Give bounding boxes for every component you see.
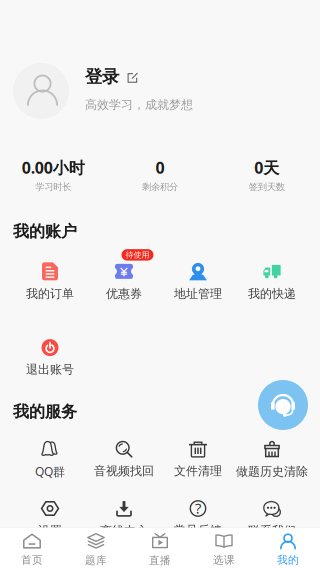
- staticText: 优惠券: [106, 286, 142, 301]
- button[interactable]: 我的订单: [13, 262, 87, 301]
- staticText: 我的服务: [13, 402, 77, 421]
- staticText: 签到天数: [249, 181, 285, 193]
- staticText: 我的账户: [13, 222, 77, 241]
- button[interactable]: 选课: [192, 529, 256, 566]
- staticText: 登录: [85, 66, 119, 87]
- staticText: 0.00小时: [22, 157, 85, 178]
- staticText: 0天: [254, 157, 279, 178]
- staticText: 学习时长: [35, 181, 71, 193]
- staticText: 剩余积分: [142, 181, 178, 193]
- staticText: 文件清理: [174, 464, 222, 478]
- staticText: 离线中心: [100, 523, 148, 538]
- staticText: 题库: [85, 554, 107, 567]
- staticText: 直播: [149, 554, 171, 567]
- staticText: 选课: [213, 553, 235, 566]
- staticText: 高效学习，成就梦想: [85, 97, 193, 112]
- button[interactable]: 联系我们: [235, 499, 309, 538]
- staticText: 常见反馈: [174, 523, 222, 538]
- button[interactable]: 离线中心: [87, 499, 161, 538]
- staticText: 设置: [38, 523, 62, 538]
- staticText: ?: [195, 498, 201, 518]
- button[interactable]: 待使用: [87, 262, 161, 301]
- staticText: 做题历史清除: [236, 464, 308, 479]
- button[interactable]: 设置: [13, 499, 87, 538]
- button[interactable]: 文件清理: [161, 441, 235, 478]
- staticText: 我的快递: [248, 286, 296, 301]
- button[interactable]: 登录: [85, 66, 138, 87]
- staticText: 音视频找回: [94, 464, 154, 478]
- staticText: 我的: [277, 553, 299, 566]
- button[interactable]: 直播: [128, 529, 192, 567]
- staticText: 我的订单: [26, 286, 74, 301]
- staticText: 0: [155, 157, 164, 178]
- button[interactable]: ?: [161, 500, 235, 538]
- staticText: 首页: [21, 553, 43, 566]
- button[interactable]: 在线客服: [258, 380, 308, 430]
- button[interactable]: 首页: [0, 529, 64, 566]
- button[interactable]: 我的快递: [235, 262, 309, 301]
- staticText: 联系我们: [248, 523, 296, 538]
- button[interactable]: QQ群: [13, 439, 87, 479]
- staticText: 地址管理: [174, 286, 222, 301]
- button[interactable]: 做题历史清除: [235, 440, 309, 479]
- button[interactable]: 退出账号: [13, 339, 87, 377]
- staticText: 退出账号: [26, 362, 74, 377]
- button[interactable]: 我的: [256, 529, 320, 566]
- button[interactable]: 题库: [64, 529, 128, 567]
- staticText: QQ群: [35, 463, 65, 479]
- staticText: 待使用: [125, 250, 149, 260]
- button[interactable]: 音视频找回: [87, 441, 161, 478]
- button[interactable]: 地址管理: [161, 262, 235, 301]
